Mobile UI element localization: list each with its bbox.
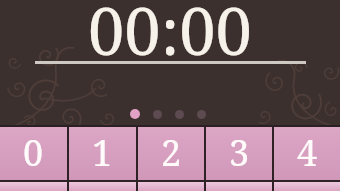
button[interactable] — [274, 182, 340, 191]
staticText: 2 — [161, 128, 182, 177]
button[interactable] — [0, 182, 67, 191]
staticText: 3 — [229, 128, 250, 177]
button[interactable] — [138, 182, 204, 191]
button[interactable] — [153, 110, 162, 119]
button[interactable]: 4 — [274, 127, 340, 180]
button[interactable] — [69, 182, 136, 191]
staticText: 00:00 — [88, 0, 252, 75]
staticText: 0 — [23, 128, 44, 177]
button[interactable]: 2 — [138, 127, 204, 180]
button[interactable]: 3 — [206, 127, 272, 180]
button[interactable] — [197, 110, 206, 119]
button[interactable]: 1 — [69, 127, 136, 180]
staticText: 1 — [92, 128, 113, 177]
staticText: 4 — [297, 128, 318, 177]
button[interactable]: 0 — [0, 127, 67, 180]
button[interactable] — [175, 110, 184, 119]
button[interactable] — [130, 109, 140, 119]
button[interactable] — [206, 182, 272, 191]
